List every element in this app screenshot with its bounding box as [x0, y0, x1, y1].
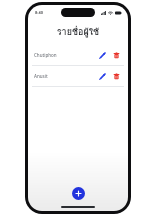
staticText: Chutiphon [34, 52, 97, 58]
button[interactable]: Delete Chutiphon [111, 50, 122, 61]
button[interactable]: Anusit [28, 66, 128, 86]
button[interactable]: Delete Anusit [111, 71, 122, 82]
button[interactable]: Add user [72, 187, 85, 200]
staticText: รายชื่อผู้ใช้ [28, 25, 128, 39]
button[interactable]: Edit Anusit [97, 71, 108, 82]
staticText: 8:40 [35, 10, 43, 15]
button[interactable]: Edit Chutiphon [97, 50, 108, 61]
button[interactable]: Chutiphon [28, 45, 128, 65]
staticText: Anusit [34, 73, 97, 79]
other: Add user [75, 190, 82, 197]
